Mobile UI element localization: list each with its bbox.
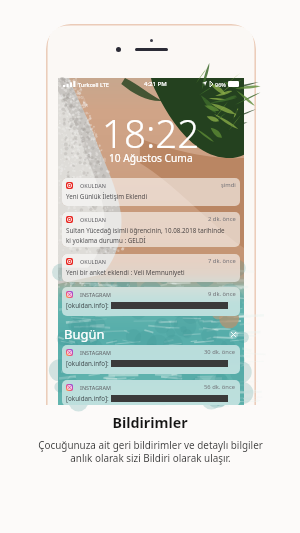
staticText: şimdi: [221, 181, 236, 189]
staticText: 2 dk. önce: [208, 215, 236, 223]
staticText: 18:22: [102, 107, 200, 159]
staticText: OKULDAN: [80, 258, 107, 265]
staticText: INSTAGRAM: [80, 291, 111, 298]
staticText: OKULDAN: [80, 216, 107, 223]
staticText: 4:21 PM: [144, 80, 167, 88]
staticText: Bugün: [64, 325, 105, 343]
button[interactable]: INSTAGRAM: [62, 287, 240, 316]
staticText: INSTAGRAM: [80, 349, 111, 356]
staticText: ki yoklama durumu : GELDİ: [66, 236, 146, 245]
staticText: 30 dk. önce: [204, 348, 236, 356]
staticText: Turkcell LTE: [78, 81, 109, 88]
button[interactable]: OKULDAN: [62, 212, 240, 247]
staticText: 10 Ağustos Cuma: [109, 151, 193, 165]
staticText: Sultan Yücedağ isimli öğrencinin, 10.08.…: [66, 226, 225, 235]
staticText: Yeni bir anket eklendi : Veli Memnuniyet…: [66, 268, 185, 277]
staticText: Çocuğunuza ait geri bildirimler ve detay…: [38, 438, 263, 464]
staticText: 7 dk. önce: [208, 257, 236, 265]
staticText: 9 dk. önce: [208, 290, 236, 298]
button[interactable]: Clear notifications: [229, 330, 238, 339]
staticText: 56 dk. önce: [204, 383, 236, 391]
button[interactable]: OKULDAN: [62, 254, 240, 282]
staticText: [okuldan.info]:: [66, 394, 109, 403]
staticText: OKULDAN: [80, 182, 107, 189]
button[interactable]: INSTAGRAM: [62, 345, 240, 374]
staticText: 96%: [215, 81, 226, 88]
staticText: [okuldan.info]:: [66, 359, 109, 368]
button[interactable]: OKULDAN: [62, 178, 240, 206]
staticText: INSTAGRAM: [80, 384, 111, 391]
staticText: Bildirimler: [112, 413, 188, 432]
button[interactable]: INSTAGRAM: [62, 380, 240, 406]
staticText: Yeni Günlük İletişim Eklendi: [66, 192, 148, 201]
staticText: [okuldan.info]:: [66, 301, 109, 310]
